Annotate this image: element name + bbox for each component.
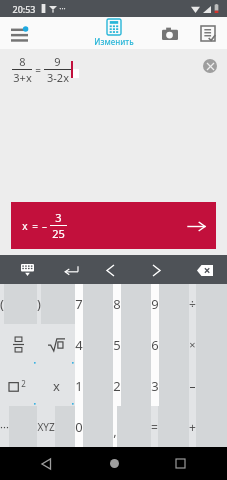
staticText: 25 xyxy=(52,226,65,241)
staticText: – xyxy=(189,378,196,394)
staticText: 3 xyxy=(151,377,159,395)
staticText: ) xyxy=(37,295,41,313)
staticText: × xyxy=(189,337,196,352)
button[interactable]: ··· xyxy=(0,406,9,447)
button[interactable]: = xyxy=(151,406,158,447)
staticText: 9 xyxy=(151,295,159,313)
staticText: ÷ xyxy=(189,296,196,312)
staticText: Изменить xyxy=(94,36,134,47)
button[interactable]: 9 xyxy=(151,284,159,324)
staticText: – xyxy=(42,219,47,233)
staticText: 3 xyxy=(55,210,62,225)
button[interactable]: 8 xyxy=(113,284,121,324)
button[interactable]: 6 xyxy=(151,324,159,365)
staticText: = xyxy=(151,419,158,435)
staticText: 1 xyxy=(75,377,83,395)
button[interactable]: 7 xyxy=(75,284,83,324)
button[interactable]: + xyxy=(189,406,196,447)
staticText: = xyxy=(32,219,38,233)
button[interactable]: , xyxy=(113,406,117,447)
staticText: 20:53 xyxy=(12,3,36,15)
button[interactable]: ÷ xyxy=(189,284,196,324)
staticText: 7 xyxy=(75,295,83,313)
button[interactable]: Clear xyxy=(203,59,217,73)
staticText: 3-2x xyxy=(47,70,69,85)
staticText: 9 xyxy=(54,54,61,69)
button[interactable]: Move right xyxy=(144,258,168,282)
staticText: 5 xyxy=(113,336,121,354)
button[interactable]: 0 xyxy=(75,406,83,447)
button[interactable]: Menu xyxy=(0,17,38,49)
button[interactable]: 4 xyxy=(75,324,83,365)
other: Next xyxy=(185,215,207,237)
staticText: = xyxy=(35,63,41,77)
staticText: 4 xyxy=(75,336,83,354)
button[interactable]: 2 xyxy=(0,365,37,406)
staticText: x xyxy=(22,219,28,233)
staticText: 0 xyxy=(75,418,83,436)
button[interactable]: XYZ xyxy=(37,406,55,447)
staticText: 2 xyxy=(21,378,26,389)
staticText: 2 xyxy=(113,377,121,395)
button[interactable]: Recents xyxy=(160,447,200,480)
staticText: 6 xyxy=(151,336,159,354)
button[interactable] xyxy=(37,324,75,365)
button[interactable]: ) xyxy=(37,284,41,324)
staticText: 3+x xyxy=(13,70,32,85)
staticText: 8 xyxy=(113,295,121,313)
button[interactable]: 5 xyxy=(113,324,121,365)
button[interactable]: x xyxy=(11,202,216,249)
button[interactable] xyxy=(0,324,37,365)
button[interactable]: Backspace xyxy=(191,256,219,284)
button[interactable]: ( xyxy=(0,284,4,324)
staticText: ( xyxy=(0,295,4,313)
button[interactable]: Move left xyxy=(98,258,122,282)
staticText: 8 xyxy=(19,54,26,69)
button[interactable]: Hide keyboard xyxy=(14,257,40,283)
button[interactable]: 3 xyxy=(151,365,159,406)
button[interactable]: Notes xyxy=(189,17,227,49)
button[interactable]: 1 xyxy=(75,365,83,406)
button[interactable]: Camera xyxy=(151,17,189,49)
staticText: x xyxy=(53,377,60,395)
button[interactable]: x xyxy=(37,365,75,406)
staticText: ··· xyxy=(59,3,66,14)
staticText: ··· xyxy=(0,419,9,434)
button[interactable]: 2 xyxy=(113,365,121,406)
button[interactable]: – xyxy=(189,365,196,406)
button[interactable]: Back xyxy=(27,447,67,480)
button[interactable]: Home xyxy=(94,447,134,480)
staticText: , xyxy=(113,422,117,440)
staticText: + xyxy=(189,419,196,435)
staticText: XYZ xyxy=(37,420,55,434)
button[interactable]: Enter xyxy=(58,257,84,283)
button[interactable]: Изменить xyxy=(83,17,145,49)
button[interactable]: × xyxy=(189,324,196,365)
